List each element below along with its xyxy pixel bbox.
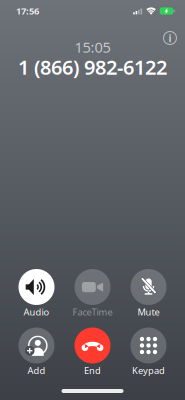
button[interactable]: FaceTime [64, 269, 120, 320]
button[interactable]: Call details [156, 24, 184, 52]
button[interactable]: End [64, 327, 120, 378]
staticText: Audio [23, 306, 49, 318]
staticText: FaceTime [72, 306, 112, 318]
staticText: 15:05 [74, 37, 110, 57]
staticText: 1 (866) 982-6122 [18, 54, 167, 80]
button[interactable]: Audio [8, 269, 64, 320]
button[interactable]: Keypad [120, 327, 176, 378]
button[interactable]: Mute [120, 269, 176, 320]
staticText: Add [27, 364, 45, 377]
staticText: 17:56 [16, 5, 39, 17]
staticText: i [168, 31, 171, 45]
button[interactable]: Add [8, 327, 64, 378]
staticText: Keypad [132, 364, 165, 377]
staticText: Mute [137, 306, 159, 318]
staticText: End [84, 364, 101, 377]
